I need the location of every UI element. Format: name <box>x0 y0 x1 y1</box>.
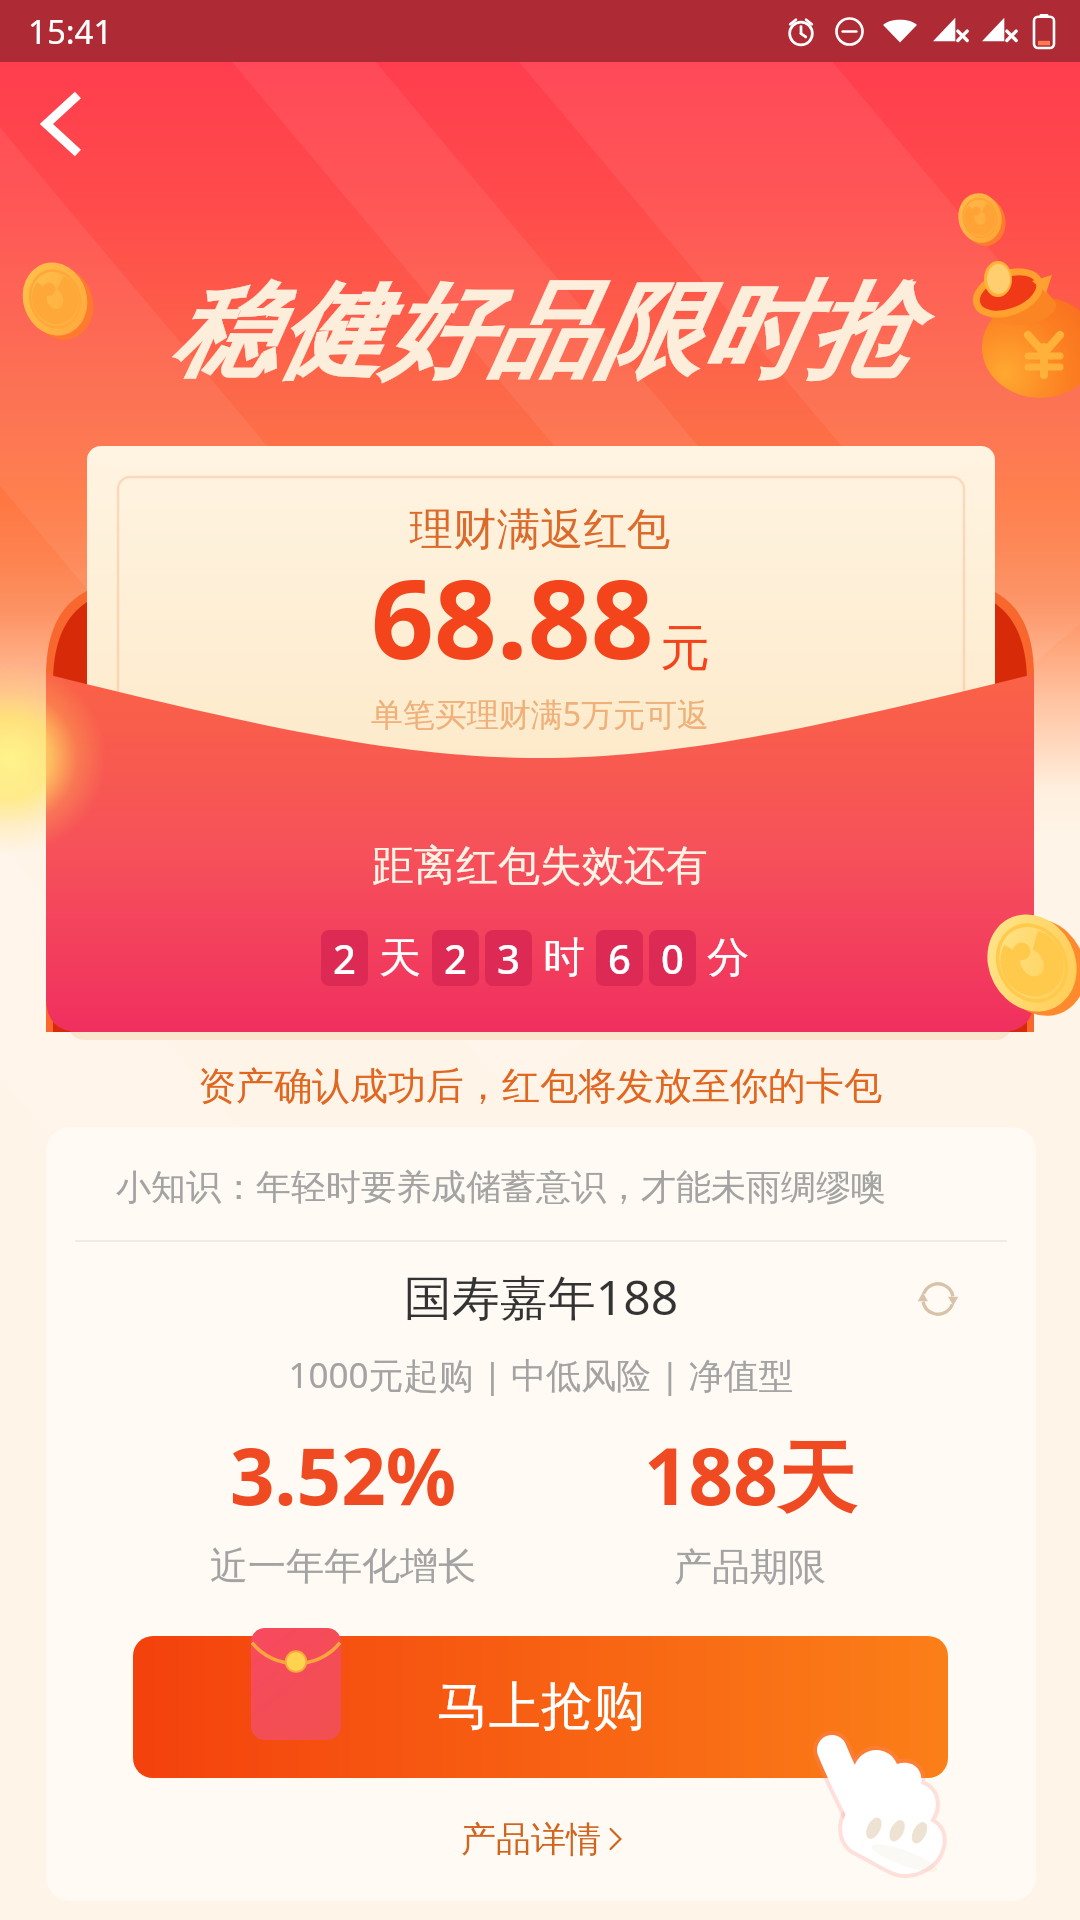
staticText: 近一年年化增长 <box>210 1542 476 1590</box>
staticText: 产品期限 <box>674 1543 826 1591</box>
staticText: 稳健好品限时抢 <box>169 267 911 398</box>
staticText: 188天 <box>644 1422 856 1529</box>
button[interactable]: 马上抢购 <box>133 1636 948 1778</box>
staticText: 单笔买理财满5万元可返 <box>0 692 1080 736</box>
staticText: 元 <box>660 617 710 680</box>
staticText: 3.52% <box>230 1422 457 1528</box>
staticText: 2 <box>333 931 356 985</box>
staticText: 时 <box>543 932 585 985</box>
staticText: 分 <box>707 932 749 985</box>
staticText: 资产确认成功后，红包将发放至你的卡包 <box>0 1062 1080 1110</box>
staticText: 天 <box>379 932 421 985</box>
staticText: 3 <box>497 931 520 985</box>
staticText: 小知识：年轻时要养成储蓄意识，才能未雨绸缪噢 <box>116 1165 886 1209</box>
staticText: 15:41 <box>28 9 113 54</box>
button[interactable]: 产品详情 <box>46 1817 1036 1861</box>
staticText: 0 <box>661 931 684 985</box>
staticText: 国寿嘉年188 <box>46 1264 1036 1330</box>
staticText: 2 <box>444 931 467 985</box>
staticText: 68.88 <box>371 541 654 691</box>
staticText: 6 <box>608 931 631 985</box>
button[interactable]: Back <box>18 82 102 166</box>
staticText: 距离红包失效还有 <box>0 840 1080 893</box>
staticText: 产品详情 <box>461 1817 601 1861</box>
staticText: 马上抢购 <box>437 1674 645 1740</box>
staticText: 理财满返红包 <box>0 502 1080 557</box>
staticText: 1000元起购 | 中低风险 | 净值型 <box>46 1351 1036 1399</box>
button[interactable]: Refresh <box>908 1269 968 1329</box>
